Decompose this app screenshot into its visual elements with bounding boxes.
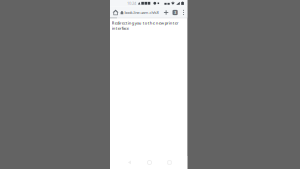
button[interactable]: More options <box>180 7 188 17</box>
button[interactable]: Home <box>112 7 120 17</box>
button[interactable]: Switch tabs <box>171 7 180 17</box>
button[interactable]: Address bar <box>120 7 162 17</box>
button[interactable]: Home <box>139 156 159 169</box>
staticText: 10:24 <box>127 1 136 6</box>
staticText: 3 <box>174 10 176 15</box>
staticText: book-line.uam.ch/s8 <box>124 10 158 15</box>
button[interactable]: New tab <box>162 7 171 17</box>
staticText: Redirecting you to the new printer inter… <box>112 20 179 31</box>
